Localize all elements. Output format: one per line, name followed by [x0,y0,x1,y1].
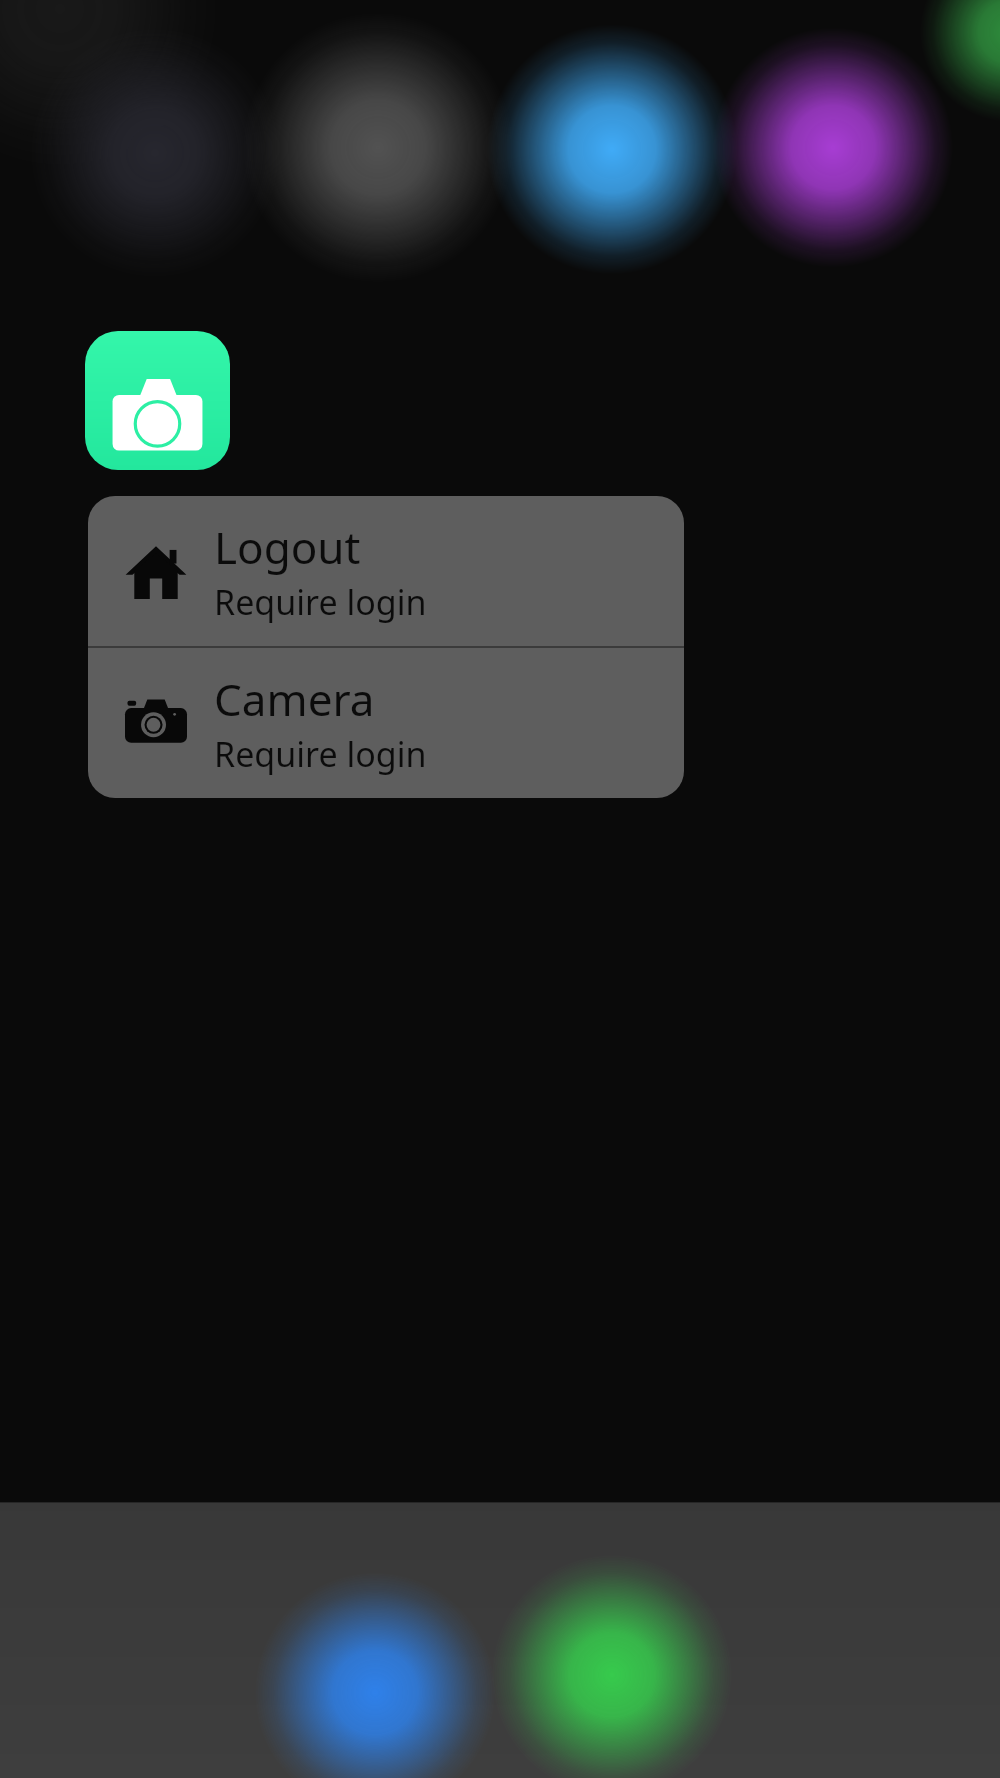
staticText: Camera [214,669,375,729]
button[interactable]: Logout [88,496,684,646]
staticText: Require login [214,731,427,777]
button[interactable]: Camera [88,648,684,798]
staticText: Logout [214,517,361,577]
button[interactable]: Camera [85,331,230,470]
staticText: Require login [214,579,427,625]
